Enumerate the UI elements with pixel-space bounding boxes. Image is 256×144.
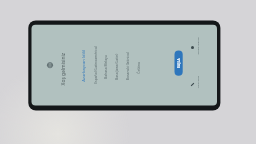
- button[interactable]: Welcome setup screen on phone: [0, 0, 256, 144]
